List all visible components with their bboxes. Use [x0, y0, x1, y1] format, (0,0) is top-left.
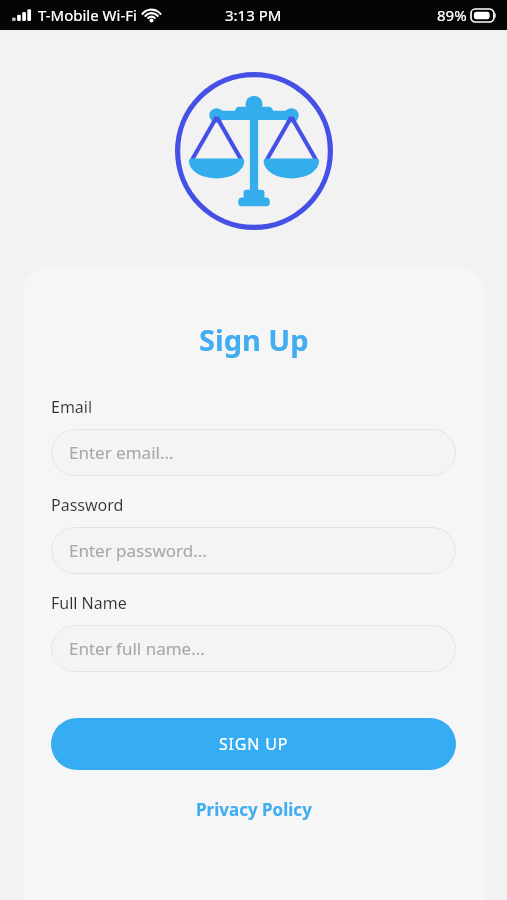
staticText: 89% — [437, 5, 467, 25]
staticText: Enter email... — [69, 441, 174, 464]
staticText: Email — [51, 396, 93, 418]
button[interactable]: Privacy Policy — [51, 798, 456, 821]
button[interactable]: SIGN UP — [51, 718, 456, 770]
staticText: 3:13 PM — [225, 5, 282, 25]
staticText: Enter password... — [69, 539, 207, 562]
button[interactable]: Enter password... — [51, 527, 456, 574]
staticText: Enter full name... — [69, 637, 205, 660]
button[interactable]: Enter full name... — [51, 625, 456, 672]
staticText: Password — [51, 494, 124, 516]
staticText: Sign Up — [199, 320, 309, 359]
button[interactable]: Enter email... — [51, 429, 456, 476]
staticText: T-Mobile Wi-Fi — [38, 5, 137, 25]
staticText: Privacy Policy — [196, 798, 312, 821]
staticText: SIGN UP — [219, 733, 289, 755]
staticText: Full Name — [51, 592, 127, 614]
